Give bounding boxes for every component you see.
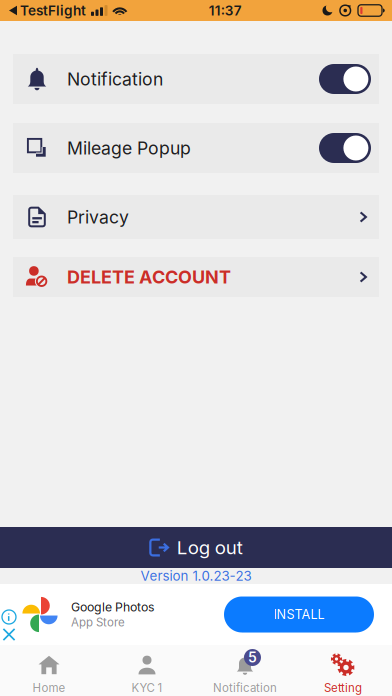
button[interactable]: KYC 1 [98, 645, 196, 696]
button[interactable]: DELETE ACCOUNT [13, 257, 379, 297]
button[interactable]: Privacy [13, 195, 379, 239]
button[interactable]: Close ad [2, 628, 15, 641]
staticText: Log out [177, 536, 243, 559]
button[interactable]: Log out [0, 527, 392, 568]
staticText: KYC 1 [131, 681, 162, 695]
staticText: INSTALL [273, 607, 324, 622]
button[interactable]: Mileage Popup [13, 123, 379, 173]
button[interactable]: Home [0, 645, 98, 696]
staticText: TestFlight [20, 2, 86, 19]
button[interactable]: Notification [13, 54, 379, 104]
staticText: Mileage Popup [67, 137, 191, 159]
button[interactable]: Ad information [2, 610, 16, 624]
button[interactable]: Version 1.0.23-23 [0, 568, 392, 584]
staticText: 11:37 [209, 2, 242, 19]
button[interactable]: Setting [294, 645, 392, 696]
button[interactable]: 5 [196, 645, 294, 696]
staticText: Notification [213, 681, 277, 695]
staticText: Version 1.0.23-23 [140, 568, 251, 584]
staticText: 5 [248, 649, 257, 666]
button[interactable]: INSTALL [224, 596, 374, 632]
staticText: Home [32, 681, 65, 695]
staticText: Notification [67, 68, 163, 90]
staticText: DELETE ACCOUNT [67, 266, 231, 288]
staticText: Google Photos [71, 600, 154, 614]
staticText: Privacy [67, 206, 129, 228]
staticText: App Store [71, 615, 125, 629]
staticText: Setting [324, 681, 362, 695]
